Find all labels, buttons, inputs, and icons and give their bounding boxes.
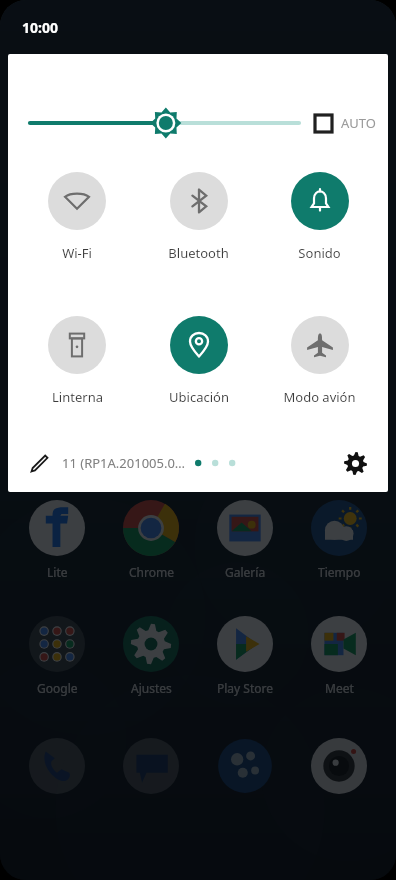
button[interactable]: Ajustes bbox=[104, 616, 198, 696]
button[interactable]: Brightness bbox=[26, 106, 313, 140]
button[interactable]: Meet bbox=[292, 616, 386, 696]
button[interactable]: Google bbox=[10, 616, 104, 696]
button[interactable]: Ubicación bbox=[138, 316, 259, 406]
staticText: Chrome bbox=[129, 564, 174, 580]
button[interactable] bbox=[10, 738, 104, 794]
staticText: AUTO bbox=[341, 114, 376, 132]
button[interactable]: Bluetooth bbox=[138, 172, 259, 262]
staticText: Bluetooth bbox=[168, 244, 229, 262]
button[interactable]: Play Store bbox=[198, 616, 292, 696]
staticText: Modo avión bbox=[283, 388, 356, 406]
staticText: Meet bbox=[325, 680, 354, 696]
button[interactable]: Galería bbox=[198, 500, 292, 580]
button[interactable]: Settings bbox=[336, 444, 374, 482]
staticText: Play Store bbox=[217, 680, 273, 696]
button[interactable] bbox=[292, 738, 386, 794]
button[interactable]: Linterna bbox=[16, 316, 138, 406]
button[interactable]: Wi-Fi bbox=[16, 172, 138, 262]
button[interactable]: Edit bbox=[22, 446, 56, 480]
button[interactable]: Tiempo bbox=[292, 500, 386, 580]
staticText: Tiempo bbox=[318, 564, 361, 580]
staticText: Lite bbox=[47, 564, 68, 580]
staticText: Ajustes bbox=[131, 680, 172, 696]
button[interactable]: AUTO bbox=[313, 106, 376, 140]
staticText: 10:00 bbox=[22, 18, 58, 37]
button[interactable] bbox=[104, 738, 198, 794]
staticText: Sonido bbox=[298, 244, 341, 262]
button[interactable]: Chrome bbox=[104, 500, 198, 580]
staticText: Galería bbox=[225, 564, 266, 580]
button[interactable]: Modo avión bbox=[259, 316, 380, 406]
button[interactable]: Sonido bbox=[259, 172, 380, 262]
staticText: Linterna bbox=[52, 388, 103, 406]
button[interactable]: Lite bbox=[10, 500, 104, 580]
staticText: Wi-Fi bbox=[62, 244, 92, 262]
staticText: Ubicación bbox=[169, 388, 229, 406]
button[interactable] bbox=[198, 738, 292, 794]
staticText: Google bbox=[37, 680, 78, 696]
staticText: 11 (RP1A.201005.0… bbox=[62, 454, 186, 472]
